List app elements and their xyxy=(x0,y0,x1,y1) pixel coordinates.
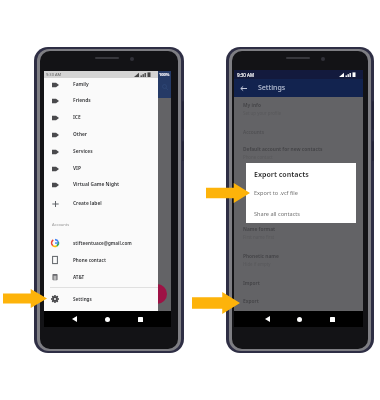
button[interactable]: Friends xyxy=(44,92,158,109)
staticText: Virtual Game Night xyxy=(73,181,120,188)
staticText: Share all contacts xyxy=(254,210,301,218)
button[interactable]: Add contact xyxy=(147,284,167,304)
button[interactable]: Other xyxy=(44,126,158,143)
button[interactable]: Import xyxy=(243,280,363,287)
button[interactable]: Services xyxy=(44,143,158,160)
button[interactable]: My info xyxy=(243,102,363,116)
staticText: Export xyxy=(243,298,259,305)
button[interactable]: Recents xyxy=(135,314,145,324)
staticText: Import xyxy=(243,280,260,287)
staticText: 9:30 AM xyxy=(46,72,62,77)
button[interactable]: Phone contact xyxy=(44,251,158,268)
button[interactable]: Phonetic name xyxy=(243,253,363,267)
button[interactable]: Default account for new contacts xyxy=(243,146,363,160)
button[interactable]: Back xyxy=(238,83,249,94)
staticText: 9:30 AM xyxy=(237,72,255,78)
staticText: Settings xyxy=(73,296,92,302)
staticText: Default account for new contacts xyxy=(243,146,323,153)
staticText: Phone contact xyxy=(73,257,106,263)
staticText: Other xyxy=(73,131,88,138)
button[interactable]: Back xyxy=(69,314,79,324)
staticText: ICE xyxy=(73,114,81,121)
button[interactable]: ICE xyxy=(44,109,158,126)
staticText: Phonetic name xyxy=(243,253,279,260)
staticText: Export to .vcf file xyxy=(254,189,298,197)
button[interactable]: Export xyxy=(243,298,363,305)
button[interactable]: Settings xyxy=(44,290,158,307)
staticText: Name format xyxy=(243,226,276,233)
staticText: AT&T xyxy=(73,274,85,280)
button[interactable]: Share all contacts xyxy=(246,207,356,221)
button[interactable]: Export to .vcf file xyxy=(246,186,356,200)
staticText: Create label xyxy=(73,200,102,207)
staticText: Accounts xyxy=(52,222,70,227)
button[interactable]: Home xyxy=(102,314,112,324)
staticText: stifteentuace@gmail.com xyxy=(73,240,132,246)
button[interactable]: Recents xyxy=(327,314,337,324)
staticText: 100% xyxy=(159,72,170,77)
staticText: Settings xyxy=(258,83,286,93)
staticText: Friends xyxy=(73,97,91,104)
button[interactable]: Name format xyxy=(243,226,363,240)
button[interactable]: stifteentuace@gmail.com xyxy=(44,234,158,251)
staticText: My info xyxy=(243,102,261,109)
staticText: Family xyxy=(73,81,89,88)
button[interactable]: Home xyxy=(294,314,304,324)
button[interactable]: Family xyxy=(44,76,158,93)
button[interactable]: AT&T xyxy=(44,268,158,285)
staticText: Services xyxy=(73,148,93,155)
staticText: Export contacts xyxy=(254,170,309,180)
staticText: VIP xyxy=(73,165,81,172)
button[interactable]: Create label xyxy=(44,195,158,212)
button[interactable]: Virtual Game Night xyxy=(44,176,158,193)
button[interactable]: Back xyxy=(262,314,272,324)
staticText: Accounts xyxy=(243,129,264,136)
button[interactable]: VIP xyxy=(44,160,158,177)
